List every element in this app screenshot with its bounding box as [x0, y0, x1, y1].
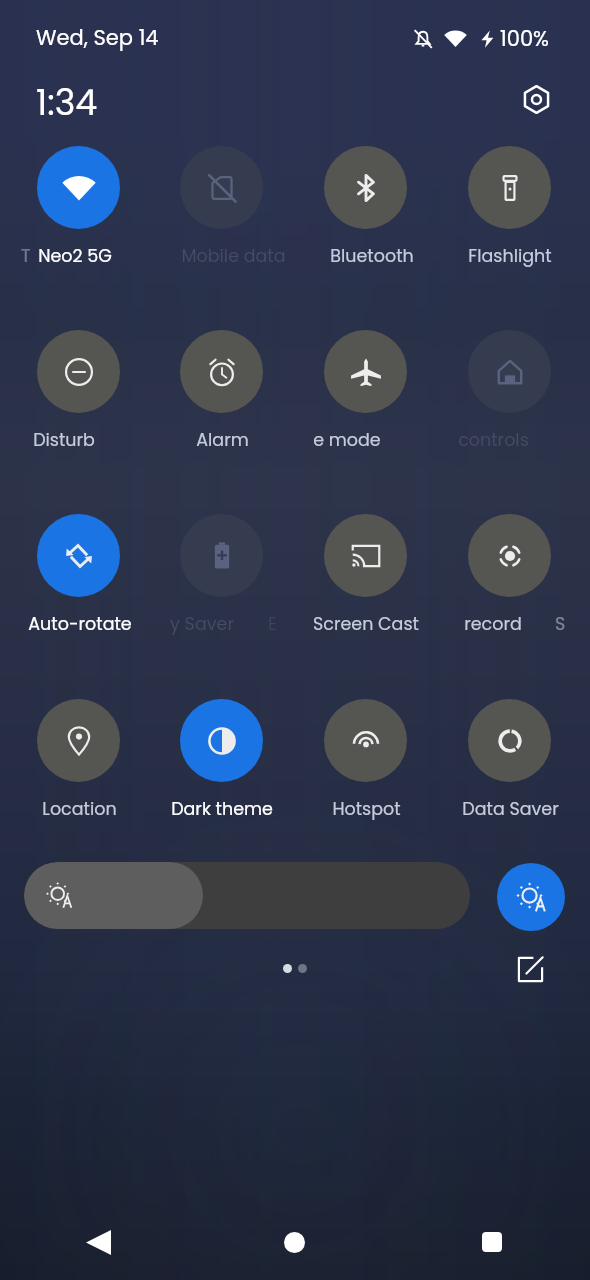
- staticText: Mobile data: [181, 244, 286, 269]
- staticText: Wed, Sep 14: [36, 23, 159, 52]
- button[interactable]: Dark theme: [150, 693, 294, 862]
- button[interactable]: Mobile data: [150, 140, 294, 309]
- button[interactable]: Edit tiles: [508, 947, 552, 991]
- button[interactable]: Auto-rotate: [7, 508, 151, 677]
- staticText: y Saver: [170, 612, 234, 637]
- staticText: Data Saver: [462, 797, 559, 822]
- button[interactable]: Bluetooth: [294, 140, 438, 309]
- staticText: 1:34: [36, 78, 98, 127]
- staticText: Flashlight: [468, 244, 552, 269]
- button[interactable]: Screen Cast: [294, 508, 438, 677]
- button[interactable]: Home: [196, 1204, 393, 1280]
- staticText: controls: [458, 428, 529, 453]
- staticText: record: [464, 612, 522, 637]
- button[interactable]: Neo2 5G: [7, 140, 151, 309]
- button[interactable]: Disturb: [7, 324, 151, 493]
- button[interactable]: record: [438, 508, 582, 677]
- staticText: Auto-rotate: [28, 612, 132, 637]
- button[interactable]: Recents: [393, 1204, 590, 1280]
- button[interactable]: Location: [7, 693, 151, 862]
- staticText: 100%: [500, 24, 550, 53]
- button[interactable]: Back: [0, 1204, 196, 1280]
- button[interactable]: Flashlight: [438, 140, 582, 309]
- button[interactable]: Settings: [512, 75, 560, 123]
- staticText: E: [268, 612, 277, 637]
- staticText: e mode: [313, 428, 381, 453]
- button[interactable]: controls: [438, 324, 582, 493]
- staticText: Dark theme: [171, 797, 273, 822]
- button[interactable]: y Saver: [150, 508, 294, 677]
- button[interactable]: Alarm: [150, 324, 294, 493]
- staticText: Bluetooth: [330, 244, 414, 269]
- button[interactable]: Brightness: [24, 862, 470, 929]
- staticText: Neo2 5G: [38, 244, 112, 269]
- staticText: Screen Cast: [313, 612, 419, 637]
- button[interactable]: Hotspot: [294, 693, 438, 862]
- staticText: Disturb: [33, 428, 95, 453]
- staticText: Alarm: [196, 428, 249, 453]
- button[interactable]: Data Saver: [438, 693, 582, 862]
- button[interactable]: e mode: [294, 324, 438, 493]
- staticText: T: [21, 244, 31, 269]
- staticText: Hotspot: [332, 797, 401, 822]
- staticText: Location: [42, 797, 117, 822]
- staticText: S: [555, 612, 566, 637]
- button[interactable]: Auto brightness: [497, 863, 565, 931]
